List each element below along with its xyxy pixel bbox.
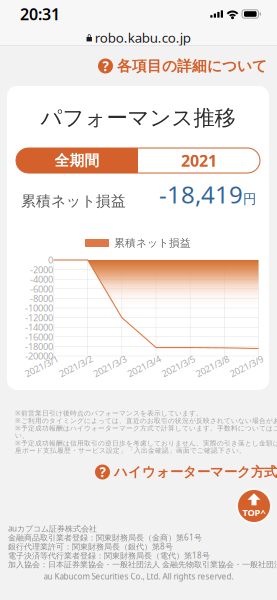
staticText: 円 <box>243 191 256 207</box>
staticText: ※前営業日引け後時点のパフォーマンスを表示しています。 <box>15 409 203 417</box>
staticText: 2021/3/4 <box>126 360 162 372</box>
staticText: 2021 <box>181 150 217 171</box>
staticText: -18000 <box>25 340 53 353</box>
staticText: 累積ネット損益 <box>114 236 191 249</box>
staticText: ハイウォーターマーク方式とは <box>114 464 277 480</box>
staticText: 各項目の詳細について <box>117 57 267 75</box>
button[interactable]: ? <box>95 464 277 480</box>
staticText: au Kabucom Securities Co., Ltd. All righ… <box>43 571 233 582</box>
staticText: い。 <box>15 431 29 440</box>
staticText: パフォーマンス推移 <box>40 105 235 131</box>
staticText: -12000 <box>25 311 53 324</box>
button[interactable]: ? <box>98 57 267 75</box>
staticText: ? <box>99 463 105 481</box>
button[interactable]: 全期間 <box>16 148 138 173</box>
button[interactable]: Back to top <box>236 488 272 524</box>
staticText: -4000 <box>30 273 53 285</box>
staticText: ※予定成功報酬は信用取引の逆日歩を考慮しておりません。実際の引き落とし金額はPC… <box>15 439 277 447</box>
staticText: -8000 <box>30 292 53 305</box>
staticText: 銀行代理業許可：関東財務局長（銀代）第8号 <box>8 541 173 552</box>
staticText: robo.kabu.co.jp <box>95 29 191 46</box>
staticText: -20000 <box>25 350 53 362</box>
staticText: -10000 <box>25 302 53 314</box>
staticText: ※予定成功報酬はハイウォーターマーク方式で計算しています。手数料についてはこちら… <box>15 424 277 432</box>
staticText: 2021/3/3 <box>92 360 128 372</box>
staticText: 2021/3/5 <box>160 360 196 372</box>
staticText: 2021/3/8 <box>194 360 230 372</box>
staticText: ※ご利用のタイミングによっては、直近のお取引の状況が反映されていない場合がありま… <box>15 416 277 425</box>
staticText: 2021/3/2 <box>58 360 94 372</box>
staticText: -2000 <box>30 263 53 276</box>
staticText: ? <box>102 57 108 75</box>
staticText: 0 <box>48 254 53 266</box>
staticText: auカブコム証券株式会社 <box>8 523 97 534</box>
staticText: 座ボード支払履歴・サービス設定」「入出金確認」画面でご確認下さい。 <box>15 446 246 455</box>
staticText: -6000 <box>30 283 53 295</box>
staticText: 20:31 <box>20 3 60 25</box>
button[interactable]: Address <box>0 28 277 48</box>
staticText: 電子決済等代行業者登録：関東財務局長（電代）第18号 <box>8 550 210 561</box>
staticText: -14000 <box>25 321 53 333</box>
staticText: 金融商品取引業者登録：関東財務局長（金商）第61号 <box>8 532 202 543</box>
button[interactable]: 2021 <box>138 148 260 173</box>
staticText: TOP^ <box>242 506 265 519</box>
staticText: 2021/3/1 <box>23 360 59 372</box>
staticText: 全期間 <box>54 151 99 169</box>
staticText: 加入協会：日本証券業協会・一般社団法人 金融先物取引業協会・一般社団法人 日本投… <box>8 560 277 569</box>
staticText: 2021/3/9 <box>228 360 264 372</box>
staticText: -18,419 <box>159 178 243 210</box>
staticText: -16000 <box>25 331 53 343</box>
staticText: 累積ネット損益 <box>21 192 126 210</box>
